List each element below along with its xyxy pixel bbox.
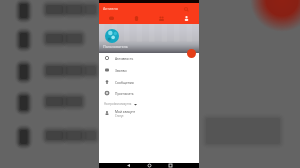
staticText: Пользователь	[103, 44, 128, 49]
button[interactable]: Chats	[99, 14, 124, 24]
button[interactable]: Home	[145, 163, 153, 168]
button[interactable]: Profile	[174, 14, 199, 24]
button[interactable]: Сообщения	[99, 76, 199, 88]
button[interactable]: Back	[124, 163, 132, 168]
staticText: Активно	[103, 6, 118, 11]
button[interactable]: Groups	[149, 14, 174, 24]
button[interactable]: Profile photo	[105, 29, 119, 43]
button[interactable]: Пригласить	[99, 87, 199, 99]
staticText: Настройки аккаунта	[104, 102, 132, 106]
button[interactable]: New chat	[187, 49, 196, 58]
staticText: Статус	[115, 114, 124, 118]
staticText: Мой аккаунт	[115, 109, 136, 113]
button[interactable]: Активность	[99, 52, 199, 64]
button[interactable]: Search	[182, 5, 190, 13]
staticText: Пригласить	[115, 91, 134, 95]
button[interactable]: Calls	[124, 14, 149, 24]
button[interactable]: Recents	[166, 163, 174, 168]
staticText: Активность	[115, 56, 134, 60]
staticText: Звонки	[115, 68, 127, 72]
button[interactable]: Мой аккаунт	[99, 107, 199, 119]
staticText: Сообщения	[115, 80, 134, 84]
button[interactable]: Звонки	[99, 64, 199, 76]
